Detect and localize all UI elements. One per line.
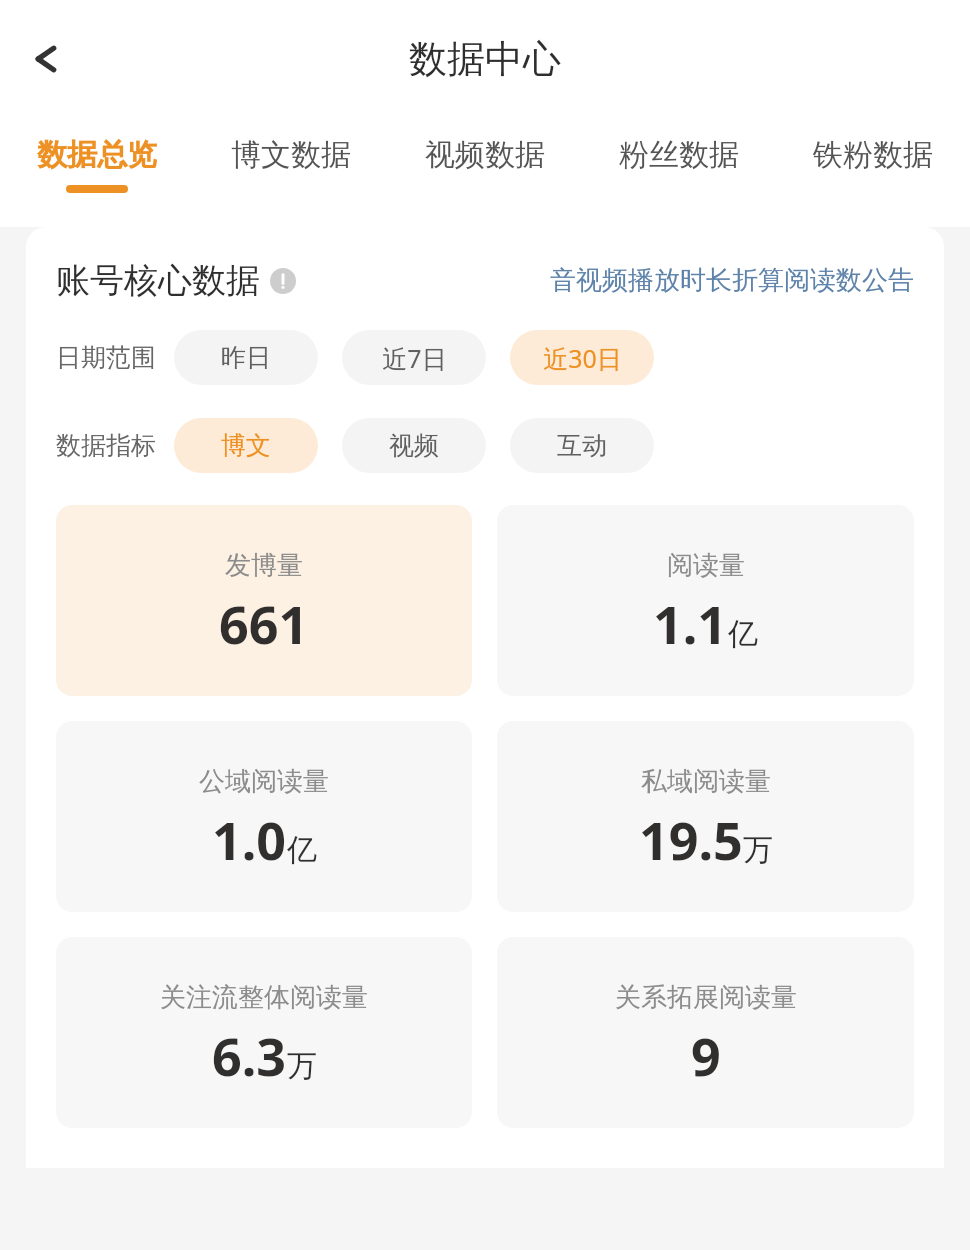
button[interactable]: 互动 [510, 418, 654, 473]
button[interactable]: 音视频播放时长折算阅读数公告 [550, 264, 914, 297]
staticText: 粉丝数据 [619, 136, 739, 174]
staticText: 近30日 [543, 341, 622, 375]
staticText: 博文 [221, 430, 271, 461]
staticText: 铁粉数据 [813, 136, 933, 174]
staticText: 互动 [557, 430, 607, 461]
staticText: 数据中心 [409, 35, 561, 83]
staticText: 万 [287, 1047, 317, 1085]
staticText: 私域阅读量 [641, 765, 771, 798]
button[interactable]: 关系拓展阅读量 [497, 937, 914, 1128]
staticText: 1.1 [653, 588, 728, 659]
button[interactable]: 视频数据 [388, 118, 582, 185]
staticText: 博文数据 [231, 136, 351, 174]
staticText: 关注流整体阅读量 [160, 981, 368, 1014]
staticText: 数据总览 [37, 136, 157, 174]
staticText: 昨日 [221, 342, 271, 373]
staticText: 视频数据 [425, 136, 545, 174]
staticText: 万 [743, 831, 773, 869]
button[interactable]: Back [8, 20, 86, 98]
staticText: 661 [219, 588, 309, 659]
staticText: 账号核心数据 [56, 259, 260, 302]
button[interactable]: 昨日 [174, 330, 318, 385]
button[interactable]: 数据总览 [0, 118, 194, 193]
staticText: 9 [691, 1020, 721, 1091]
button[interactable]: 粉丝数据 [582, 118, 776, 185]
staticText: 视频 [389, 430, 439, 461]
button[interactable]: 公域阅读量 [56, 721, 472, 912]
button[interactable]: 私域阅读量 [497, 721, 914, 912]
button[interactable]: 发博量 [56, 505, 472, 696]
staticText: 近7日 [382, 341, 447, 375]
staticText: 音视频播放时长折算阅读数公告 [550, 264, 914, 297]
button[interactable]: 博文数据 [194, 118, 388, 185]
button[interactable]: 近30日 [510, 330, 654, 385]
staticText: 发博量 [225, 549, 303, 582]
button[interactable]: 博文 [174, 418, 318, 473]
staticText: 亿 [728, 615, 758, 653]
button[interactable]: 近7日 [342, 330, 486, 385]
button[interactable]: 视频 [342, 418, 486, 473]
button[interactable]: 铁粉数据 [776, 118, 970, 185]
staticText: 1.0 [212, 804, 287, 875]
staticText: 关系拓展阅读量 [615, 981, 797, 1014]
button[interactable]: 关注流整体阅读量 [56, 937, 472, 1128]
button[interactable]: 阅读量 [497, 505, 914, 696]
staticText: 6.3 [212, 1020, 287, 1091]
staticText: 亿 [287, 831, 317, 869]
staticText: 日期范围 [56, 342, 156, 373]
staticText: 公域阅读量 [199, 765, 329, 798]
staticText: 19.5 [639, 804, 743, 875]
staticText: 数据指标 [56, 430, 156, 461]
button[interactable]: About core data [268, 266, 298, 296]
staticText: 阅读量 [667, 549, 745, 582]
